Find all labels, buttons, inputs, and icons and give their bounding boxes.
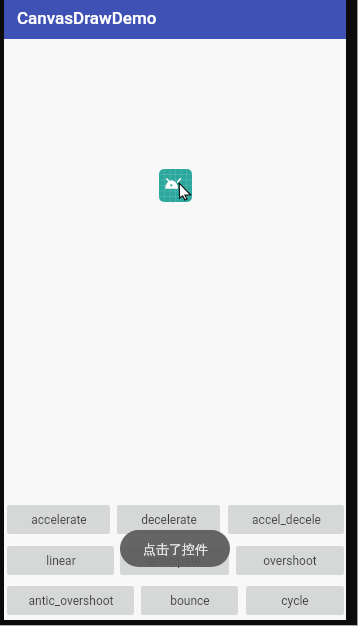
button[interactable]: accelerate xyxy=(7,505,110,534)
button[interactable]: bounce xyxy=(141,586,238,615)
button[interactable]: linear xyxy=(7,546,114,575)
button[interactable]: decelerate xyxy=(117,505,220,534)
button[interactable]: accel_decele xyxy=(228,505,344,534)
staticText: accelerate xyxy=(31,513,87,527)
staticText: decelerate xyxy=(141,513,197,527)
staticText: antic_overshoot xyxy=(28,594,114,608)
button[interactable]: cycle xyxy=(246,586,344,615)
staticText: 点击了控件 xyxy=(143,541,208,557)
staticText: bounce xyxy=(170,594,210,608)
staticText: accel_decele xyxy=(252,513,321,527)
staticText: linear xyxy=(46,554,76,568)
button[interactable]: anticipate xyxy=(120,546,229,575)
staticText: CanvasDrawDemo xyxy=(17,8,157,28)
staticText: overshoot xyxy=(263,554,317,568)
staticText: anticipate xyxy=(148,554,201,568)
staticText: cycle xyxy=(281,594,309,608)
button[interactable]: antic_overshoot xyxy=(7,586,134,615)
button[interactable]: Android canvas drawing xyxy=(155,167,195,207)
button[interactable]: overshoot xyxy=(236,546,344,575)
